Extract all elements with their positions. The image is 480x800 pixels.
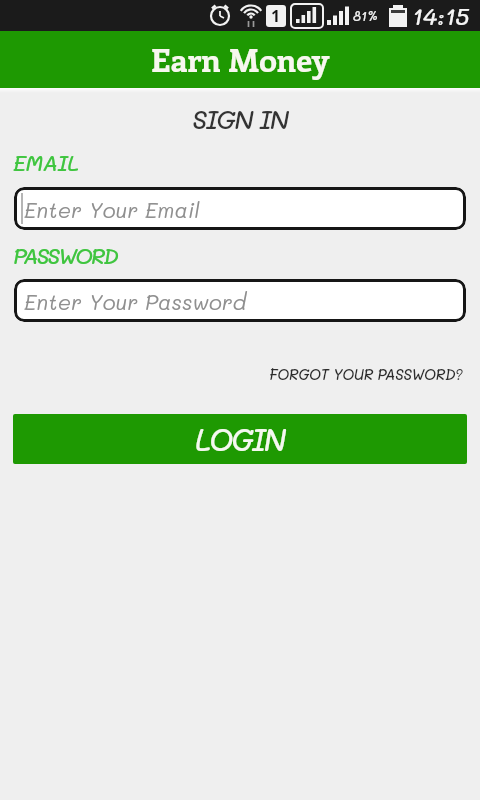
- staticText: Earn Money: [151, 38, 330, 81]
- button[interactable]: LOGIN: [13, 414, 467, 464]
- staticText: 81%: [353, 7, 379, 24]
- staticText: SIGN IN: [192, 102, 288, 136]
- button[interactable]: Enter Your Email: [14, 187, 466, 230]
- button[interactable]: Enter Your Password: [14, 279, 466, 322]
- staticText: Enter Your Password: [24, 287, 247, 315]
- staticText: EMAIL: [13, 148, 79, 177]
- staticText: 1: [271, 5, 281, 27]
- button[interactable]: FORGOT YOUR PASSWORD?: [269, 364, 463, 383]
- staticText: Enter Your Email: [24, 195, 200, 223]
- staticText: LOGIN: [195, 420, 285, 459]
- staticText: 14:15: [412, 0, 470, 31]
- staticText: PASSWORD: [13, 241, 117, 270]
